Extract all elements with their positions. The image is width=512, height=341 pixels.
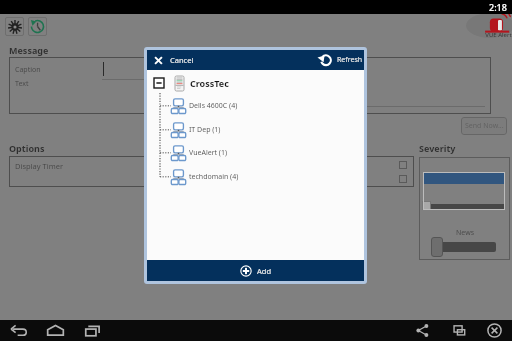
staticText: 2:18 [489, 1, 507, 13]
button[interactable]: CrossTec [147, 73, 364, 93]
button[interactable]: Share [411, 320, 433, 341]
staticText: Text [15, 79, 29, 89]
button[interactable]: Recent apps [81, 320, 103, 341]
staticText: Cancel [170, 55, 194, 65]
staticText: IT Dep (1) [189, 125, 221, 135]
button[interactable]: Cancel [147, 50, 202, 70]
staticText: VUE Alert [485, 31, 512, 39]
staticText: Options [9, 142, 45, 154]
button[interactable]: Close [483, 320, 505, 341]
staticText: News [456, 228, 474, 238]
button[interactable]: IT Dep (1) [147, 121, 364, 138]
button[interactable]: VueAlert (1) [147, 144, 364, 161]
staticText: Send Now... [465, 121, 504, 131]
button[interactable]: Screenshot [448, 320, 470, 341]
staticText: Severity [419, 142, 456, 154]
staticText: Dells 4600C (4) [189, 101, 238, 111]
staticText: Add [257, 266, 272, 276]
staticText: Message [9, 44, 49, 56]
button[interactable]: Refresh [310, 50, 365, 70]
button[interactable]: Dells 4600C (4) [147, 97, 364, 114]
button[interactable]: Add [147, 260, 364, 281]
button[interactable]: Settings [5, 17, 24, 36]
staticText: Display Timer [15, 161, 63, 171]
staticText: CrossTec [190, 77, 229, 89]
button[interactable]: Back [7, 320, 29, 341]
button[interactable]: Home [44, 320, 66, 341]
button[interactable]: History [28, 17, 47, 36]
button[interactable]: Send Now... [461, 117, 507, 135]
staticText: Refresh [337, 55, 363, 65]
staticText: Caption [15, 65, 41, 75]
button[interactable]: techdomain (4) [147, 168, 364, 185]
staticText: VueAlert (1) [189, 148, 228, 158]
staticText: techdomain (4) [189, 172, 239, 182]
